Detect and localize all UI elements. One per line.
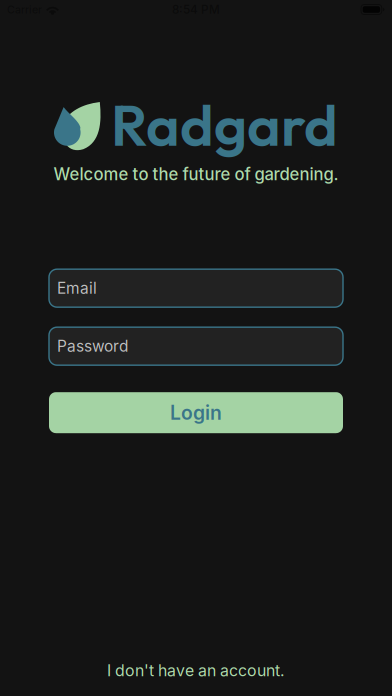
button[interactable]: Login	[49, 392, 343, 433]
staticText: Login	[170, 401, 222, 424]
button[interactable]: Email	[49, 269, 343, 307]
staticText: Welcome to the future of gardening.	[53, 164, 338, 184]
staticText: Email	[57, 279, 97, 297]
staticText: I don't have an account.	[107, 661, 285, 680]
staticText: Radgard	[111, 88, 338, 161]
button[interactable]: I don't have an account.	[91, 656, 301, 685]
button[interactable]: Password	[49, 327, 343, 365]
staticText: Password	[57, 337, 128, 355]
